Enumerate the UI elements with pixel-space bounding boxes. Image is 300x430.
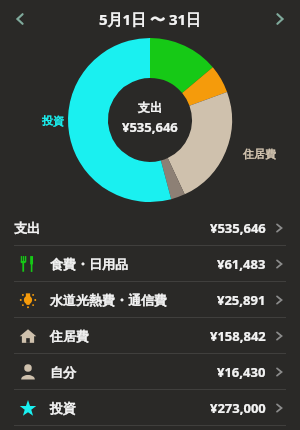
staticText: 住居費 [50,328,89,344]
staticText: ¥158,842 [210,327,266,345]
staticText: 投資 [42,114,64,128]
staticText: ¥535,646 [122,118,178,136]
staticText: 支出 [14,220,40,236]
staticText: ¥273,000 [210,399,266,417]
staticText: 支出 [138,100,162,115]
button[interactable]: Next month [266,5,294,33]
button[interactable]: 自分 [0,354,300,389]
button[interactable]: 食費・日用品 [0,246,300,281]
staticText: ¥61,483 [217,255,266,273]
staticText: 自分 [50,364,76,380]
button[interactable]: 支出 [0,210,300,245]
button[interactable]: 投資 [0,390,300,425]
staticText: 5月1日 〜 31日 [99,9,202,29]
button[interactable]: 住居費 [0,318,300,353]
staticText: ¥535,646 [210,219,266,237]
staticText: 住居費 [243,147,276,161]
staticText: ¥16,430 [217,363,266,381]
staticText: 食費・日用品 [50,256,128,272]
button[interactable]: 水道光熱費・通信費 [0,282,300,317]
staticText: ¥25,891 [217,291,266,309]
staticText: 投資 [50,400,76,416]
button[interactable]: Previous month [6,5,34,33]
staticText: 水道光熱費・通信費 [50,292,167,308]
